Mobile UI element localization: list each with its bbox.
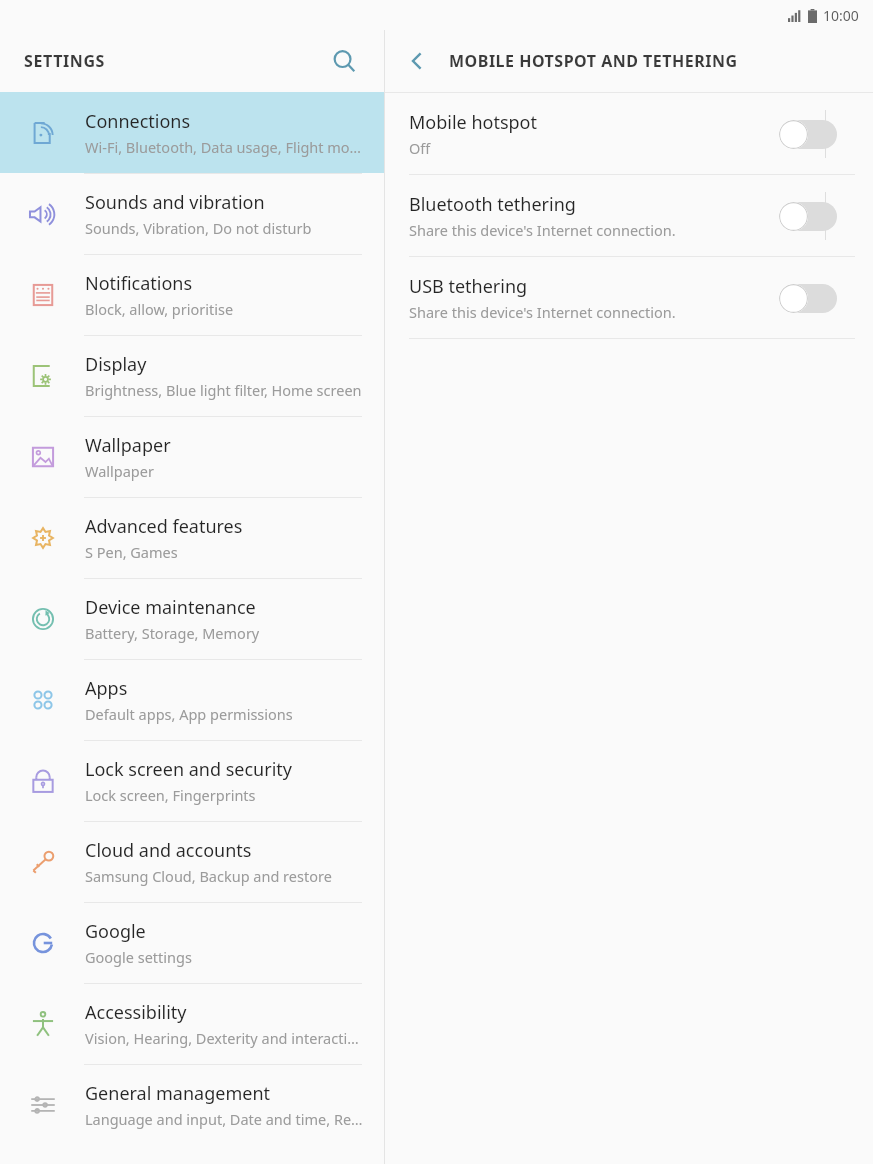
staticText: Mobile hotspot bbox=[409, 110, 537, 135]
staticText: Device maintenance bbox=[85, 595, 256, 620]
staticText: Advanced features bbox=[85, 514, 243, 539]
staticText: Share this device's Internet connection. bbox=[409, 302, 676, 322]
staticText: USB tethering bbox=[409, 274, 528, 299]
staticText: Wallpaper bbox=[85, 461, 154, 481]
staticText: Bluetooth tethering bbox=[409, 192, 576, 217]
staticText: Cloud and accounts bbox=[85, 838, 252, 863]
staticText: Connections bbox=[85, 109, 191, 134]
button[interactable]: Connections bbox=[0, 92, 384, 173]
button[interactable]: USB tethering switch bbox=[779, 276, 843, 320]
button[interactable]: Accessibility bbox=[0, 983, 384, 1064]
staticText: Sounds, Vibration, Do not disturb bbox=[85, 218, 312, 238]
button[interactable]: Cloud and accounts bbox=[0, 821, 384, 902]
button[interactable]: Google bbox=[0, 902, 384, 983]
staticText: Battery, Storage, Memory bbox=[85, 623, 260, 643]
staticText: Samsung Cloud, Backup and restore bbox=[85, 866, 332, 886]
staticText: Display bbox=[85, 352, 147, 377]
staticText: Block, allow, prioritise bbox=[85, 299, 234, 319]
staticText: Accessibility bbox=[85, 1000, 187, 1025]
button[interactable]: Advanced features bbox=[0, 497, 384, 578]
button[interactable]: Sounds and vibration bbox=[0, 173, 384, 254]
button[interactable]: Back bbox=[393, 37, 441, 85]
button[interactable]: Wallpaper bbox=[0, 416, 384, 497]
button[interactable]: Device maintenance bbox=[0, 578, 384, 659]
staticText: Lock screen and security bbox=[85, 757, 292, 782]
staticText: Lock screen, Fingerprints bbox=[85, 785, 256, 805]
staticText: SETTINGS bbox=[24, 50, 105, 72]
staticText: Google bbox=[85, 919, 146, 944]
staticText: General management bbox=[85, 1081, 271, 1106]
staticText: Vision, Hearing, Dexterity and interacti… bbox=[85, 1028, 364, 1048]
staticText: 10:00 bbox=[823, 6, 859, 25]
button[interactable]: Display bbox=[0, 335, 384, 416]
staticText: MOBILE HOTSPOT AND TETHERING bbox=[449, 50, 738, 72]
button[interactable]: Apps bbox=[0, 659, 384, 740]
staticText: Language and input, Date and time, Res… bbox=[85, 1109, 364, 1129]
button[interactable]: Notifications bbox=[0, 254, 384, 335]
button[interactable]: Lock screen and security bbox=[0, 740, 384, 821]
button[interactable]: Search bbox=[322, 39, 366, 83]
staticText: Share this device's Internet connection. bbox=[409, 220, 676, 240]
staticText: Sounds and vibration bbox=[85, 190, 265, 215]
staticText: Notifications bbox=[85, 271, 193, 296]
staticText: Brightness, Blue light filter, Home scre… bbox=[85, 380, 362, 400]
staticText: Default apps, App permissions bbox=[85, 704, 293, 724]
button[interactable]: Bluetooth tethering bbox=[385, 175, 873, 256]
button[interactable]: USB tethering bbox=[385, 257, 873, 338]
staticText: Google settings bbox=[85, 947, 192, 967]
button[interactable]: Bluetooth tethering switch bbox=[779, 194, 843, 238]
button[interactable]: Mobile hotspot switch bbox=[779, 112, 843, 156]
staticText: Wallpaper bbox=[85, 433, 171, 458]
button[interactable]: Mobile hotspot bbox=[385, 93, 873, 174]
staticText: Apps bbox=[85, 676, 128, 701]
staticText: Wi-Fi, Bluetooth, Data usage, Flight mod… bbox=[85, 137, 364, 157]
staticText: Off bbox=[409, 138, 431, 158]
button[interactable]: General management bbox=[0, 1064, 384, 1145]
staticText: S Pen, Games bbox=[85, 542, 178, 562]
